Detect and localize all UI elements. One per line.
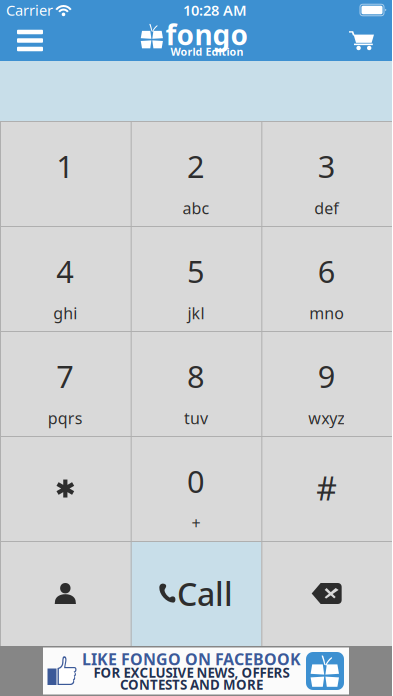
button[interactable]: Star <box>0 436 131 541</box>
button[interactable]: 7 <box>0 331 131 436</box>
staticText: CONTESTS AND MORE <box>120 676 263 693</box>
button[interactable]: Contacts <box>0 541 131 646</box>
staticText: 6 <box>318 251 336 291</box>
staticText: FOR EXCLUSIVE NEWS, OFFERS <box>93 664 289 681</box>
button[interactable]: 9 <box>261 331 392 436</box>
button[interactable]: Store <box>340 20 384 61</box>
button[interactable]: 2 <box>131 121 261 226</box>
button[interactable]: 4 <box>0 226 131 331</box>
staticText: mno <box>309 302 344 324</box>
staticText: wxyz <box>308 407 345 429</box>
staticText: 9 <box>318 356 336 396</box>
button[interactable]: 0 <box>131 436 261 541</box>
button[interactable]: 5 <box>131 226 261 331</box>
button[interactable]: Menu <box>8 20 52 61</box>
staticText: pqrs <box>48 407 83 429</box>
staticText: Carrier <box>6 0 53 20</box>
button[interactable]: 1 <box>0 121 131 226</box>
staticText: 10:28 AM <box>183 0 247 20</box>
button[interactable]: 3 <box>261 121 392 226</box>
staticText: Call <box>177 572 233 615</box>
staticText: 7 <box>56 356 74 396</box>
staticText: World Edition <box>170 44 243 59</box>
staticText: jkl <box>187 302 204 324</box>
staticText: + <box>191 512 200 534</box>
staticText: def <box>314 197 339 219</box>
button[interactable]: 6 <box>261 226 392 331</box>
staticText: LIKE FONGO ON FACEBOOK <box>82 648 301 670</box>
button[interactable]: Delete <box>261 541 392 646</box>
staticText: ghi <box>53 302 77 324</box>
staticText: 3 <box>318 146 336 186</box>
staticText: 2 <box>187 146 205 186</box>
staticText: 4 <box>56 251 74 291</box>
staticText: 5 <box>187 251 205 291</box>
staticText: abc <box>182 197 209 219</box>
button[interactable]: 8 <box>131 331 261 436</box>
button[interactable]: # <box>261 436 392 541</box>
button[interactable]: Like Fongo on Facebook <box>43 647 349 694</box>
staticText: 8 <box>187 356 205 396</box>
button[interactable]: Call <box>131 541 261 646</box>
staticText: tuv <box>184 407 208 429</box>
staticText: fongo <box>165 16 248 53</box>
staticText: 1 <box>56 146 74 186</box>
staticText: # <box>316 467 337 509</box>
staticText: 0 <box>187 461 205 501</box>
